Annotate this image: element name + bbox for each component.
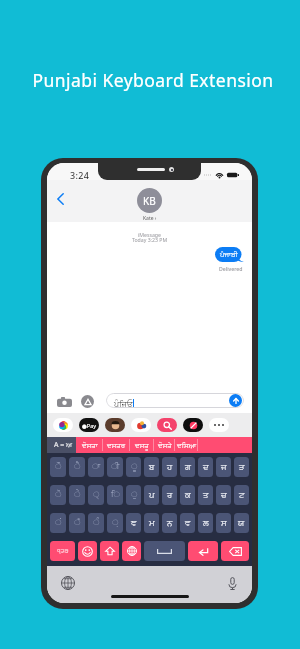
button[interactable]: Languages (122, 541, 141, 561)
button[interactable]: Search (157, 418, 177, 432)
button[interactable]: KB (137, 188, 162, 222)
button[interactable]: ◌ਾ (88, 457, 104, 477)
button[interactable]: Space (144, 541, 185, 561)
button[interactable]: ਹ (162, 457, 177, 477)
button[interactable]: ਤ (198, 485, 213, 505)
button[interactable]: ਲ (198, 513, 213, 533)
staticText: ਜ (221, 463, 227, 472)
button[interactable]: ◌ੌ (50, 457, 66, 477)
staticText: ਰ (167, 491, 173, 500)
staticText: ◌ੂ (131, 463, 137, 471)
button[interactable]: ਚ (216, 485, 231, 505)
button[interactable]: Send (229, 394, 242, 407)
button[interactable]: ਜ (216, 457, 231, 477)
button[interactable]: ਦੋਸਤਾ (76, 437, 103, 453)
staticText: Kate › (143, 215, 157, 222)
staticText: ੜ (239, 463, 245, 472)
staticText: KB (143, 194, 156, 208)
button[interactable]: ◌ੋ (50, 485, 66, 505)
button[interactable]: Numbers (50, 541, 75, 561)
staticText: ਞ (131, 519, 137, 528)
button[interactable]: ◌ੇ (69, 485, 85, 505)
button[interactable]: Photos (53, 418, 73, 432)
button[interactable]: ਬ (144, 457, 159, 477)
staticText: ਹ (167, 463, 173, 472)
button[interactable]: ਨ (162, 513, 177, 533)
button[interactable]: ਦਸਿਆ (175, 437, 198, 453)
staticText: ਦਸਿਆ (177, 442, 197, 449)
button[interactable]: ਵ (180, 513, 195, 533)
button[interactable]: More (209, 418, 229, 432)
button[interactable]: ◌੍ (88, 485, 104, 505)
button[interactable]: ◌ਂ (50, 513, 66, 533)
button[interactable]: ਗ (180, 457, 195, 477)
staticText: ਸ (221, 519, 227, 528)
staticText: ◌ੰ (93, 519, 99, 527)
button[interactable]: App Store (81, 395, 94, 408)
button[interactable]: ◌਼ (107, 513, 123, 533)
button[interactable]: Apple Pay (79, 418, 99, 432)
staticText: ਤ (203, 491, 209, 500)
staticText: ਲ (203, 519, 209, 528)
staticText: ◌ਿ (111, 491, 120, 499)
staticText: ◌੍ (93, 491, 99, 499)
button[interactable]: Emoji (78, 541, 97, 561)
button[interactable]: ਮ (144, 513, 159, 533)
button[interactable]: ਟ (234, 485, 249, 505)
button[interactable]: ◌ੂ (126, 457, 141, 477)
staticText: ◌ਁ (74, 519, 80, 527)
button[interactable]: ◌ਁ (69, 513, 85, 533)
button[interactable]: ਦੋਸਤੇ (154, 437, 175, 453)
staticText: A = ਅ (54, 440, 73, 450)
button[interactable]: Back (50, 189, 70, 209)
button[interactable]: ਪ (144, 485, 159, 505)
button[interactable]: ਦਸਤੂ (130, 437, 154, 453)
button[interactable]: ਪੰਜਿਓ (106, 393, 244, 408)
staticText: ੧੨੩ (57, 548, 69, 555)
button[interactable]: ਞ (126, 513, 141, 533)
staticText: ਦਸਤੂ (135, 442, 149, 449)
button[interactable]: ਰ (162, 485, 177, 505)
button[interactable]: ਪੰਜਾਬੀ (215, 247, 244, 262)
staticText: ਪੰਜਿਓ (114, 401, 133, 408)
button[interactable]: ◌ੈ (69, 457, 85, 477)
staticText: ਦ (203, 463, 209, 472)
button[interactable]: ਯ (234, 513, 249, 533)
button[interactable]: ਦਸਤਰ (103, 437, 130, 453)
staticText: ਪੰਜਾਬੀ (220, 251, 238, 258)
button[interactable]: Music (183, 418, 203, 432)
staticText: ◌ਾ (92, 463, 101, 471)
button[interactable]: Sticker (131, 418, 151, 432)
staticText: ਚ (221, 491, 227, 500)
staticText: ਯ (238, 519, 245, 528)
button[interactable]: Memoji (105, 418, 125, 432)
button[interactable]: Switch keyboard (61, 576, 75, 590)
button[interactable]: ◌ੰ (88, 513, 104, 533)
button[interactable]: Dictate (225, 576, 239, 590)
staticText: ◌ੋ (55, 491, 61, 499)
button[interactable]: ਕ (180, 485, 195, 505)
button[interactable]: ਦ (198, 457, 213, 477)
staticText: ਦੋਸਤਾ (82, 442, 98, 449)
staticText: ਦਸਤਰ (107, 442, 126, 449)
button[interactable]: Return (188, 541, 218, 561)
staticText: ◌ੀ (111, 463, 120, 471)
button[interactable]: Shift (100, 541, 119, 561)
staticText: ਵ (185, 519, 191, 528)
button[interactable]: A = ਅ (47, 437, 76, 453)
button[interactable]: ◌ੁ (126, 485, 141, 505)
button[interactable]: Delete (221, 541, 249, 561)
button[interactable]: ◌ੀ (107, 457, 123, 477)
staticText: ◌ੇ (74, 491, 80, 499)
staticText: ◌ੌ (55, 463, 61, 471)
button[interactable]: ◌ਿ (107, 485, 123, 505)
staticText: 3:24 (70, 169, 90, 181)
staticText: ◌਼ (112, 519, 118, 527)
button[interactable]: ੜ (234, 457, 249, 477)
button[interactable]: Camera (57, 396, 72, 407)
staticText: ਕ (185, 491, 191, 500)
staticText: ਗ (185, 463, 191, 472)
staticText: ◌ੁ (131, 491, 137, 499)
button[interactable]: ਸ (216, 513, 231, 533)
staticText: Today 3:23 PM (47, 236, 252, 243)
